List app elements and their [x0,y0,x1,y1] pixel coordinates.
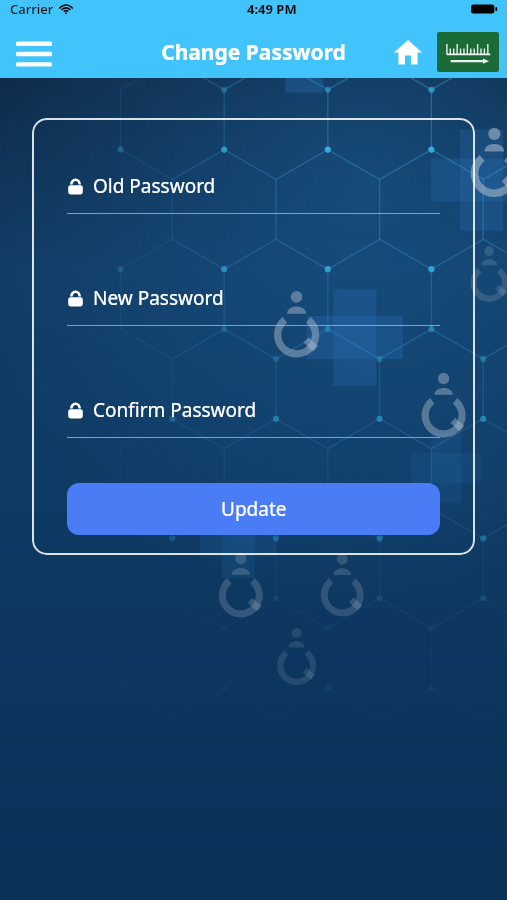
button[interactable]: Update [67,483,440,535]
button[interactable]: Language: Arabic [437,32,499,72]
staticText: Carrier [10,0,54,18]
button[interactable]: Menu [14,37,54,67]
staticText: Change Password [161,38,346,67]
staticText: Confirm Password [93,397,257,423]
button[interactable]: Home [389,33,427,71]
staticText: Update [221,496,287,522]
staticText: Old Password [93,173,216,199]
button[interactable]: Confirm Password [67,397,440,438]
staticText: 4:49 PM [247,0,297,18]
button[interactable]: Old Password [67,173,440,214]
other: Home [393,37,423,67]
button[interactable]: New Password [67,285,440,326]
other: Menu [16,39,52,65]
staticText: New Password [93,285,224,311]
